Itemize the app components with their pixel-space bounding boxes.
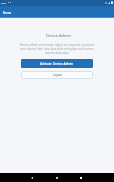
button[interactable]: Back	[25, 173, 38, 182]
staticText: 4:34	[1, 1, 6, 4]
button[interactable]: Activate Device Admin	[21, 59, 93, 68]
button[interactable]: Logout	[21, 71, 93, 79]
staticText: Logout	[53, 73, 62, 77]
staticText: Device admin permission rights are requi…	[17, 43, 97, 55]
staticText: Emma	[3, 11, 11, 15]
staticText: Device Admin	[46, 33, 71, 38]
staticText: Activate Device Admin	[40, 62, 74, 66]
button[interactable]: Recents	[74, 173, 87, 182]
button[interactable]: Home	[50, 173, 63, 182]
